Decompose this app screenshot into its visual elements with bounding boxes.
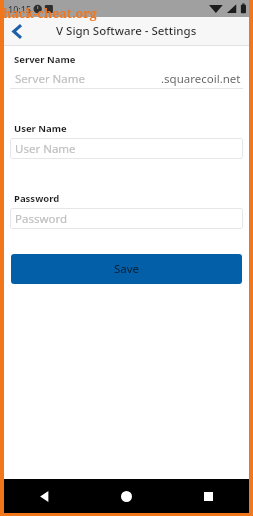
staticText: Server Name — [15, 71, 86, 87]
staticText: Password — [14, 192, 60, 205]
button[interactable]: Save — [11, 254, 242, 284]
staticText: Server Name — [14, 53, 76, 66]
button[interactable]: Back — [4, 17, 30, 45]
button[interactable]: User Name — [10, 138, 243, 159]
button[interactable]: Password — [10, 208, 243, 229]
staticText: Save — [114, 261, 140, 277]
button[interactable]: Server Name — [10, 69, 243, 89]
staticText: hack-cheat.org — [3, 5, 97, 22]
staticText: .squarecoil.net — [161, 71, 241, 87]
staticText: V Sign Software - Settings — [56, 23, 197, 39]
staticText: 10:15 — [8, 3, 32, 15]
staticText: User Name — [14, 122, 67, 135]
button[interactable]: Recent apps — [167, 479, 249, 513]
button[interactable]: Home — [85, 479, 167, 513]
button[interactable]: Back — [4, 479, 85, 513]
staticText: Password — [15, 211, 68, 227]
staticText: User Name — [15, 141, 76, 157]
